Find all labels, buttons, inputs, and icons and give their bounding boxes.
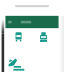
button[interactable]: Bus	[9, 19, 15, 27]
button[interactable]: App bar	[3, 10, 36, 18]
button[interactable]: Truck	[24, 19, 30, 27]
button[interactable]: Flight	[5, 36, 16, 45]
